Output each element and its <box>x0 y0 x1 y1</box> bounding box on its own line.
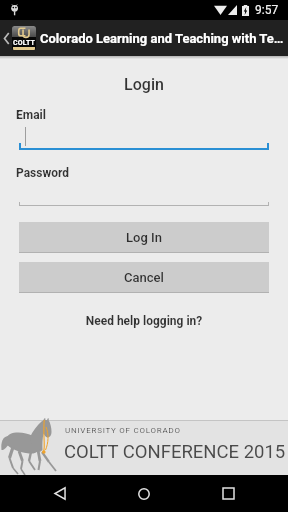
button[interactable]: Back <box>36 475 84 512</box>
staticText: Cancel <box>124 270 164 285</box>
staticText: UNIVERSITY OF COLORADO <box>65 426 181 435</box>
staticText: COLTT CONFERENCE 2015 <box>64 441 286 463</box>
staticText: Login <box>0 75 288 94</box>
button[interactable]: Recent apps <box>204 475 252 512</box>
staticText: Log In <box>126 230 162 245</box>
button[interactable]: Navigate up <box>0 20 12 56</box>
staticText: COLTT <box>13 39 36 47</box>
staticText: Colorado Learning and Teaching with Te… <box>40 31 284 46</box>
button[interactable]: Log In <box>19 222 269 253</box>
staticText: Email <box>16 108 46 122</box>
staticText: Password <box>16 166 70 180</box>
staticText: 9:57 <box>255 3 279 17</box>
button[interactable]: Cancel <box>19 262 269 293</box>
button[interactable]: Need help logging in? <box>0 314 288 328</box>
button[interactable]: Home <box>120 475 168 512</box>
